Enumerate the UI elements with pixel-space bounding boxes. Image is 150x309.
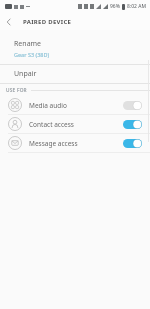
button[interactable]: Media audio xyxy=(0,96,150,114)
button[interactable]: On xyxy=(123,120,142,129)
button[interactable]: Back xyxy=(0,13,17,30)
staticText: Message access xyxy=(29,139,78,148)
button[interactable]: Rename xyxy=(0,34,150,64)
button[interactable]: Unpair xyxy=(0,65,150,83)
staticText: Unpair xyxy=(14,69,37,79)
button[interactable]: Contact access xyxy=(0,115,150,133)
staticText: Media audio xyxy=(29,101,67,110)
staticText: PAIRED DEVICE xyxy=(23,18,72,26)
button[interactable]: On xyxy=(123,139,142,148)
staticText: Contact access xyxy=(29,120,74,129)
button[interactable]: Off xyxy=(123,101,142,110)
staticText: Rename xyxy=(14,39,42,49)
staticText: 8:02 AM xyxy=(127,3,147,10)
staticText: USE FOR xyxy=(6,87,27,94)
staticText: 96% xyxy=(110,3,120,10)
staticText: Gear S3 (38D) xyxy=(14,51,50,58)
button[interactable]: Message access xyxy=(0,134,150,152)
